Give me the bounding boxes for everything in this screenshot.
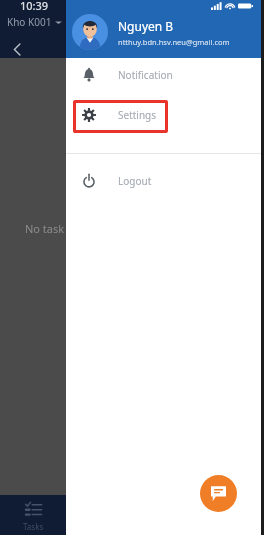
staticText: Settings — [118, 108, 157, 122]
button[interactable]: Back — [4, 36, 30, 62]
button[interactable]: Chat — [200, 475, 237, 512]
button[interactable]: Nguyen B — [66, 0, 261, 58]
staticText: No task — [25, 221, 65, 236]
staticText: Notification — [118, 68, 173, 82]
staticText: Nguyen B — [118, 18, 174, 34]
staticText: Kho K001 — [7, 15, 52, 29]
staticText: ntthuy.bdn.hsv.neu@gmail.com — [118, 37, 230, 47]
button[interactable]: Kho K001 — [7, 15, 62, 29]
button[interactable]: Notification — [66, 58, 261, 91]
button[interactable]: Tasks — [0, 495, 66, 535]
staticText: Tasks — [23, 521, 44, 532]
button[interactable]: Settings — [66, 98, 261, 131]
staticText: 10:39 — [20, 0, 49, 13]
button[interactable]: Logout — [66, 164, 261, 197]
staticText: Logout — [118, 174, 152, 188]
